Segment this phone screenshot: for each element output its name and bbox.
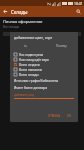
staticText: Источник: график/библиотека xyxy=(14,79,59,83)
button[interactable]: ОК xyxy=(65,113,74,119)
staticText: ОТМЕНА xyxy=(48,114,61,118)
staticText: Всего показаны xyxy=(19,68,42,72)
button[interactable]: Всего показаны xyxy=(14,67,74,72)
staticText: Нов склад идёт верх xyxy=(19,58,49,62)
staticText: добавить ряд xyxy=(14,93,34,97)
button[interactable]: Имеет более договора xyxy=(14,86,74,93)
staticText: Все склады xyxy=(3,25,19,29)
button[interactable]: Back xyxy=(0,6,11,17)
button[interactable]: добавить ряд xyxy=(14,93,74,101)
staticText: Почему xyxy=(56,44,67,48)
staticText: Склады xyxy=(11,9,73,15)
staticText: Нас подвел реал xyxy=(19,53,44,57)
staticText: Личная оформление xyxy=(3,19,43,24)
staticText: № xyxy=(24,44,27,48)
staticText: Всего склады xyxy=(19,73,39,77)
staticText: Имеет более договора xyxy=(14,86,48,90)
button[interactable]: Всего создали xyxy=(14,62,74,67)
staticText: ОК xyxy=(67,114,72,118)
button[interactable]: Всего склады xyxy=(14,72,74,77)
staticText: добавление цвет, сорт xyxy=(14,35,53,40)
button[interactable]: Нов склад идёт верх xyxy=(14,57,74,62)
button[interactable]: Источник: график/библиотека xyxy=(14,79,74,86)
button[interactable]: Search xyxy=(73,6,84,17)
staticText: Всего создали xyxy=(19,63,40,67)
staticText: 18:41 xyxy=(74,1,83,6)
button[interactable]: Нас подвел реал xyxy=(14,52,74,57)
button[interactable]: ОТМЕНА xyxy=(46,113,63,119)
